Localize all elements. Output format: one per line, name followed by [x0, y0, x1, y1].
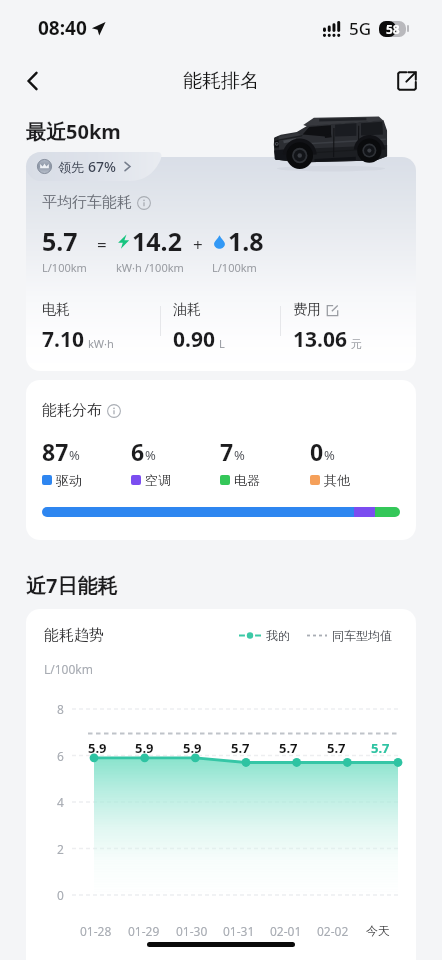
staticText: 电器	[234, 472, 260, 488]
staticText: 领先	[58, 159, 84, 175]
staticText: 5.9	[88, 739, 107, 757]
staticText: %	[234, 446, 245, 464]
button[interactable]: Share	[386, 60, 428, 102]
button[interactable]: 领先	[26, 152, 163, 181]
staticText: 5.7	[42, 224, 78, 258]
staticText: L	[219, 336, 225, 351]
staticText: 空调	[145, 472, 171, 488]
staticText: =	[97, 233, 107, 256]
staticText: +	[193, 233, 203, 256]
staticText: 2	[57, 841, 64, 857]
staticText: kW·h /100km	[116, 260, 184, 275]
staticText: 87	[42, 436, 69, 467]
staticText: 能耗趋势	[44, 626, 104, 645]
staticText: 5.7	[279, 739, 298, 757]
staticText: 0	[57, 887, 64, 903]
staticText: 01-31	[223, 923, 255, 939]
staticText: 0	[310, 436, 324, 467]
staticText: 6	[57, 748, 64, 764]
staticText: 58	[386, 21, 400, 37]
staticText: 13.06	[293, 325, 347, 353]
staticText: 8	[57, 701, 64, 717]
staticText: 近7日能耗	[26, 572, 118, 599]
staticText: 能耗排名	[183, 69, 259, 93]
staticText: 油耗	[173, 301, 201, 319]
staticText: 7	[220, 436, 234, 467]
staticText: 元	[351, 337, 362, 351]
staticText: 14.2	[132, 224, 182, 258]
staticText: 我的	[266, 628, 290, 643]
staticText: 今天	[366, 923, 390, 938]
staticText: 其他	[324, 472, 350, 488]
staticText: 5G	[349, 17, 372, 40]
staticText: L/100km	[212, 260, 257, 275]
staticText: 5.7	[231, 739, 250, 757]
staticText: 08:40	[38, 15, 87, 41]
staticText: 01-30	[176, 923, 208, 939]
staticText: 最近50km	[26, 118, 121, 145]
staticText: 同车型均值	[332, 628, 392, 643]
staticText: 费用	[293, 301, 321, 319]
staticText: 平均行车能耗	[42, 193, 132, 212]
staticText: %	[145, 446, 156, 464]
staticText: 5.9	[183, 739, 202, 757]
staticText: 67%	[88, 157, 116, 176]
staticText: %	[324, 446, 335, 464]
staticText: 4	[57, 794, 64, 810]
staticText: %	[69, 446, 80, 464]
button[interactable]: Back	[12, 60, 54, 102]
staticText: 01-28	[80, 923, 112, 939]
staticText: 驱动	[56, 472, 82, 488]
staticText: L/100km	[42, 260, 87, 275]
staticText: 5.7	[327, 739, 346, 757]
staticText: kW·h	[88, 336, 114, 351]
staticText: 1.8	[228, 224, 264, 258]
staticText: 02-01	[270, 923, 302, 939]
staticText: 5.9	[135, 739, 154, 757]
staticText: 7.10	[42, 325, 84, 353]
staticText: 6	[131, 436, 145, 467]
staticText: 01-29	[128, 923, 160, 939]
staticText: 电耗	[42, 301, 70, 319]
staticText: 02-02	[317, 923, 349, 939]
staticText: 能耗分布	[42, 401, 102, 420]
staticText: 0.90	[173, 325, 215, 353]
staticText: 5.7	[371, 739, 390, 757]
staticText: L/100km	[44, 661, 93, 677]
